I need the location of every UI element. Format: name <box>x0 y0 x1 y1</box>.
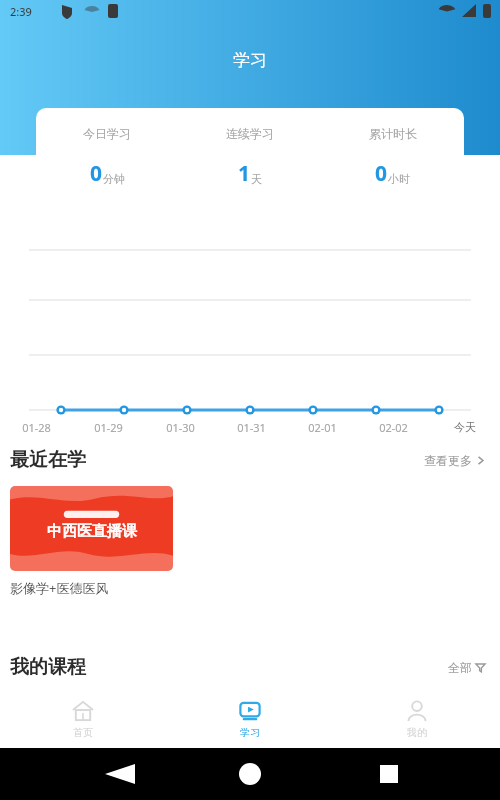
staticText: 最近在学 <box>10 448 86 472</box>
staticText: 查看更多 <box>424 453 472 468</box>
staticText: 累计时长 <box>369 126 417 141</box>
button[interactable]: 中西医直播课 <box>10 486 173 597</box>
staticText: 01-28 <box>22 420 51 435</box>
staticText: 学习 <box>233 50 267 71</box>
staticText: 连续学习 <box>226 126 274 141</box>
staticText: 小时 <box>388 172 410 186</box>
staticText: 分钟 <box>103 172 125 186</box>
staticText: 我的课程 <box>10 655 86 679</box>
staticText: 01-29 <box>94 420 123 435</box>
staticText: 全部 <box>448 660 472 675</box>
button[interactable]: 首页 <box>0 690 166 748</box>
staticText: 影像学+医德医风 <box>10 579 109 597</box>
button[interactable]: 查看更多 <box>420 449 490 472</box>
staticText: 1 <box>238 159 251 188</box>
button[interactable]: 我的 <box>333 690 500 748</box>
staticText: 01-31 <box>237 420 266 435</box>
staticText: 今日学习 <box>83 126 131 141</box>
staticText: 首页 <box>73 726 93 739</box>
staticText: 01-30 <box>166 420 195 435</box>
button[interactable]: 今日学习 <box>36 108 464 210</box>
staticText: 学习 <box>240 726 260 739</box>
staticText: 02-02 <box>379 420 408 435</box>
staticText: 今天 <box>454 420 476 434</box>
button[interactable]: 全部 <box>444 656 490 679</box>
staticText: 天 <box>251 172 262 186</box>
staticText: 中西医直播课 <box>47 522 137 541</box>
staticText: 2:39 <box>10 4 32 19</box>
staticText: 0 <box>90 159 103 188</box>
button[interactable]: 学习 <box>166 690 333 748</box>
staticText: 02-01 <box>308 420 337 435</box>
staticText: 0 <box>375 159 388 188</box>
staticText: 我的 <box>407 726 427 739</box>
